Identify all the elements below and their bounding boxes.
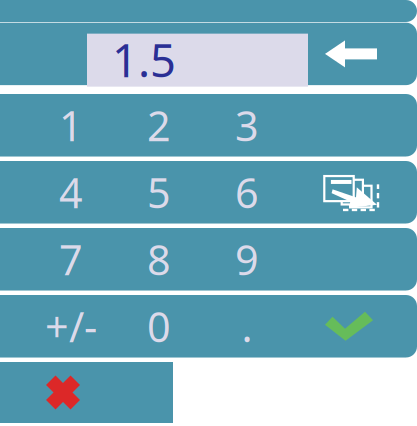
staticText: 7 [59, 232, 83, 287]
staticText: 1 [59, 98, 83, 153]
button[interactable]: 4 [27, 161, 115, 223]
staticText: 0 [147, 299, 171, 354]
button[interactable]: Backspace [285, 23, 417, 85]
button[interactable]: 3 [203, 94, 291, 156]
button[interactable]: . [203, 295, 291, 357]
staticText: . [241, 299, 252, 354]
staticText: 9 [235, 232, 259, 287]
staticText: 1.5 [112, 30, 176, 90]
staticText: 2 [147, 98, 171, 153]
staticText: +/- [45, 299, 97, 354]
button[interactable]: 5 [115, 161, 203, 223]
button[interactable]: Cancel [13, 362, 113, 423]
staticText: 5 [147, 165, 171, 220]
staticText: 4 [59, 165, 83, 220]
button[interactable]: 7 [27, 228, 115, 290]
button[interactable]: Paste [285, 161, 417, 223]
button[interactable]: Confirm [281, 295, 417, 357]
button[interactable]: 2 [115, 94, 203, 156]
button[interactable]: 8 [115, 228, 203, 290]
button[interactable]: 1 [27, 94, 115, 156]
button[interactable]: +/- [27, 295, 115, 357]
button[interactable]: 6 [203, 161, 291, 223]
staticText: 3 [235, 98, 259, 153]
staticText: 8 [147, 232, 171, 287]
button[interactable]: 9 [203, 228, 291, 290]
button[interactable]: 0 [115, 295, 203, 357]
staticText: 6 [235, 165, 259, 220]
